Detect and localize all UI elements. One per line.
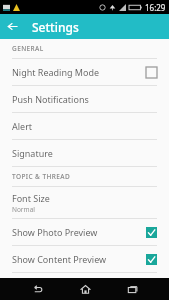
button[interactable]: Night Reading Mode <box>0 59 169 85</box>
button[interactable]: Recent apps <box>121 278 143 300</box>
staticText: 16:29 <box>145 2 166 13</box>
staticText: Push Notifications <box>12 93 89 105</box>
button[interactable]: Signature <box>0 140 169 166</box>
staticText: Normal <box>12 205 35 214</box>
button[interactable]: Home <box>74 278 96 300</box>
button[interactable]: Font Size <box>0 187 169 218</box>
staticText: Signature <box>12 147 53 159</box>
staticText: Alert <box>12 120 33 132</box>
button[interactable]: Back <box>26 278 48 300</box>
staticText: TOPIC & THREAD <box>12 172 71 181</box>
staticText: Settings <box>32 19 79 35</box>
staticText: Show Content Preview <box>12 253 146 265</box>
button[interactable]: Show Photo Preview <box>0 219 169 245</box>
button[interactable]: Alert <box>0 113 169 139</box>
staticText: Show Photo Preview <box>12 226 146 238</box>
staticText: GENERAL <box>12 44 44 53</box>
button[interactable]: Back <box>0 14 25 39</box>
staticText: Font Size <box>12 192 50 204</box>
staticText: Night Reading Mode <box>12 66 146 78</box>
button[interactable]: Show Content Preview <box>0 246 169 272</box>
button[interactable]: Push Notifications <box>0 86 169 112</box>
